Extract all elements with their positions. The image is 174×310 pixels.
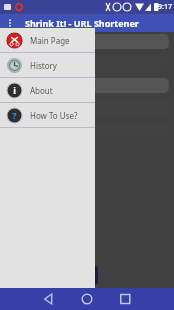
button[interactable]: i <box>0 78 95 102</box>
staticText: Shrink It! - URL Shortener <box>25 17 139 29</box>
staticText: i <box>13 84 16 96</box>
staticText: ? <box>12 109 17 121</box>
staticText: About <box>30 85 53 96</box>
button[interactable]: Main Page <box>0 28 95 52</box>
button[interactable]: ? <box>0 103 95 127</box>
staticText: History <box>30 60 57 71</box>
staticText: 19:17 <box>154 2 172 12</box>
button[interactable]: Open navigation drawer <box>0 14 20 32</box>
button[interactable]: SHARE THIS APP! :) <box>12 265 98 285</box>
staticText: Main Page <box>30 35 70 46</box>
button[interactable]: History <box>0 53 95 77</box>
staticText: How To Use? <box>30 110 78 121</box>
